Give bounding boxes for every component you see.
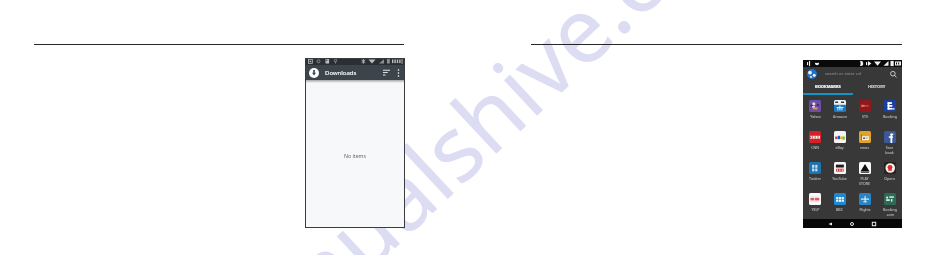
button[interactable]: YELP [803,188,827,219]
staticText: Booking .com [883,207,897,217]
staticText: Booking [883,114,897,119]
staticText: CNN [811,145,819,150]
button[interactable]: Opera [877,157,902,188]
button[interactable]: Recent apps [863,219,885,228]
button[interactable]: Flights [852,188,877,219]
button[interactable]: HISTORY [852,81,902,95]
button[interactable]: BBC [827,188,852,219]
staticText: search or enter url [825,71,862,77]
button[interactable]: eBay [827,126,852,157]
staticText: Downloads [325,69,357,77]
staticText: BBC [836,207,843,212]
staticText: manualshive.com [160,0,786,255]
staticText: STS [862,114,868,119]
staticText: YouTube [832,176,847,181]
button[interactable]: Amazon [827,95,852,126]
staticText: No items [344,152,366,159]
button[interactable]: Twitter [803,157,827,188]
staticText: YELP [811,207,820,212]
button[interactable]: More options [393,68,403,78]
staticText: eBay [835,145,844,150]
staticText: Twitter [809,176,821,181]
staticText: Yahoo [810,114,821,119]
button[interactable]: CNN [803,126,827,157]
button[interactable]: PLAY STORE [852,157,877,188]
button[interactable]: STS [852,95,877,126]
button[interactable]: Face book [877,126,902,157]
button[interactable]: news [852,126,877,157]
button[interactable]: Home [841,219,863,228]
button[interactable]: YouTube [827,157,852,188]
button[interactable]: BOOKMARKS [803,81,852,95]
button[interactable]: Booking [877,95,902,126]
staticText: news [860,145,869,150]
button[interactable]: Booking .com [877,188,902,219]
button[interactable]: Search [888,69,899,80]
staticText: BOOKMARKS [815,84,841,89]
staticText: Flights [859,207,871,212]
button[interactable]: Back [819,219,841,228]
staticText: PLAY STORE [859,176,870,186]
staticText: HISTORY [868,84,886,89]
staticText: Opera [884,176,895,181]
button[interactable]: Sort by [381,67,392,78]
button[interactable]: Downloads [308,67,319,78]
button[interactable]: Yahoo [803,95,827,126]
staticText: Face book [885,145,894,155]
staticText: Amazon [833,114,847,119]
